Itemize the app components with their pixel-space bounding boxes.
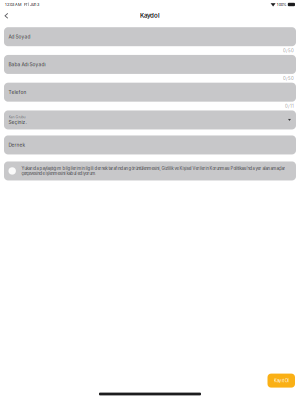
staticText: 0/50 bbox=[283, 76, 294, 81]
staticText: Yukarıda paylaştığım bilgilerimin ilgili… bbox=[21, 166, 285, 176]
button[interactable]: Kan Grubu bbox=[4, 110, 296, 129]
button[interactable]: Telefon bbox=[4, 83, 296, 102]
staticText: Kan Grubu bbox=[8, 115, 25, 119]
staticText: Baba Adı Soyadı bbox=[8, 61, 45, 67]
button[interactable]: Dernek bbox=[4, 135, 296, 154]
staticText: Ad Soyad bbox=[8, 34, 30, 40]
staticText: 100% bbox=[277, 2, 287, 7]
staticText: 0/50 bbox=[283, 48, 294, 53]
button[interactable]: Kayıt Ol bbox=[267, 374, 295, 388]
staticText: Kayıt Ol bbox=[274, 378, 289, 383]
button[interactable]: Yukarıda paylaştığım bilgilerimin ilgili… bbox=[4, 161, 296, 180]
button[interactable]: Ad Soyad bbox=[4, 27, 296, 46]
button[interactable]: Baba Adı Soyadı bbox=[4, 55, 296, 74]
staticText: Seçiniz. bbox=[8, 119, 26, 125]
staticText: 12:03 AM Fri Jun 3 bbox=[5, 2, 39, 7]
staticText: 0/11 bbox=[285, 103, 294, 109]
staticText: Kaydol bbox=[140, 12, 160, 19]
staticText: Telefon bbox=[8, 89, 26, 95]
staticText: Dernek bbox=[8, 142, 25, 148]
button[interactable]: Back bbox=[0, 10, 14, 23]
